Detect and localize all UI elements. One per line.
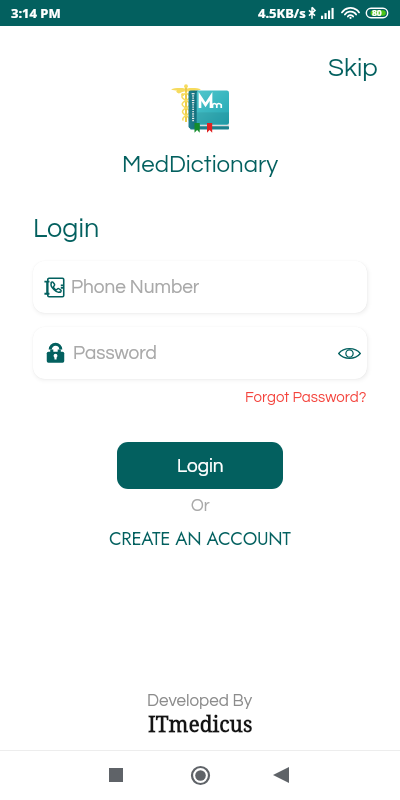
staticText: CREATE AN ACCOUNT: [109, 525, 291, 552]
button[interactable]: Back: [257, 751, 305, 799]
button[interactable]: Home: [176, 751, 224, 799]
staticText: Skip: [328, 55, 378, 82]
staticText: Forgot Password?: [245, 390, 367, 405]
button[interactable]: CREATE AN ACCOUNT: [103, 522, 297, 555]
button[interactable]: Forgot Password?: [245, 390, 367, 405]
button[interactable]: Show password: [335, 344, 364, 363]
button[interactable]: Skip: [320, 53, 386, 84]
staticText: 3:14 PM: [11, 4, 61, 22]
staticText: Login: [177, 456, 224, 476]
staticText: Login: [33, 215, 100, 243]
staticText: Phone Number: [71, 277, 200, 297]
button[interactable]: Password: [33, 327, 367, 379]
button[interactable]: Phone Number: [33, 261, 367, 313]
button[interactable]: Login: [117, 442, 283, 489]
button[interactable]: Recents: [92, 751, 140, 799]
staticText: ITmedicus: [148, 710, 253, 739]
staticText: Or: [191, 497, 210, 515]
staticText: 4.5KB/s: [258, 4, 306, 22]
staticText: MedDictionary: [122, 152, 279, 177]
staticText: Developed By: [147, 692, 253, 710]
staticText: Password: [73, 343, 157, 363]
staticText: 80: [372, 7, 382, 19]
